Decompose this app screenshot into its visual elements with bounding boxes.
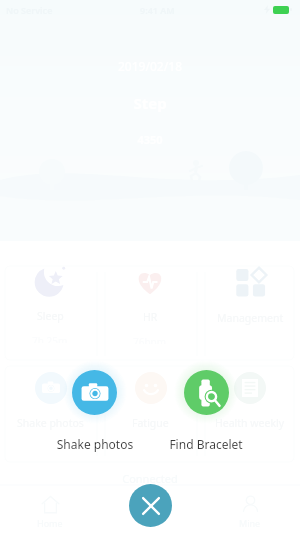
button[interactable]: Shake photos xyxy=(0,362,100,450)
staticText: Connected xyxy=(0,471,300,486)
button[interactable] xyxy=(72,370,117,415)
staticText: Health weekly xyxy=(215,416,285,430)
staticText: HR xyxy=(143,310,158,324)
staticText: Management xyxy=(217,311,284,325)
staticText: Fatigue xyxy=(132,416,169,430)
button[interactable] xyxy=(184,370,229,415)
button[interactable]: Management xyxy=(200,257,300,345)
button[interactable]: Fatigue xyxy=(100,362,200,450)
staticText: Shake photos xyxy=(17,416,84,430)
button[interactable]: Close xyxy=(129,484,172,527)
button[interactable]: Health weekly xyxy=(200,362,300,450)
staticText: Find Bracelet xyxy=(151,436,261,452)
staticText: Shake photos xyxy=(40,436,150,452)
button[interactable]: Sleep xyxy=(0,255,100,343)
staticText: Sleep xyxy=(37,309,64,323)
